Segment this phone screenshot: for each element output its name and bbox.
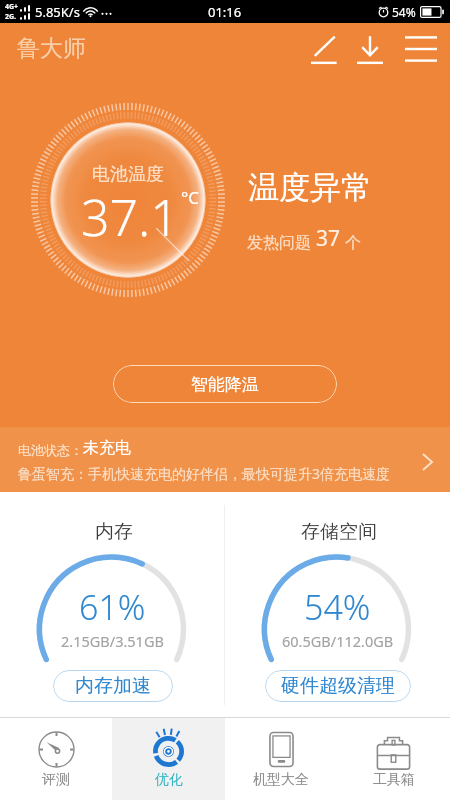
- staticText: 温度异常: [248, 168, 372, 207]
- staticText: 4G+: [5, 2, 19, 12]
- staticText: °C: [181, 186, 200, 209]
- staticText: 电池温度: [92, 163, 164, 186]
- staticText: 存储空间: [301, 520, 377, 544]
- staticText: 2.15GB/3.51GB: [61, 631, 164, 651]
- staticText: 54%: [304, 584, 371, 630]
- staticText: 智能降温: [191, 374, 259, 395]
- button[interactable]: 工具箱: [337, 718, 450, 800]
- staticText: 2G.: [5, 12, 17, 22]
- button[interactable]: [0, 427, 450, 492]
- staticText: 60.5GB/112.0GB: [282, 631, 394, 651]
- staticText: 鲁蛋智充：手机快速充电的好伴侣，最快可提升3倍充电速度: [18, 464, 391, 483]
- button[interactable]: Edit: [300, 25, 348, 73]
- staticText: 电池状态：: [18, 442, 83, 458]
- staticText: 机型大全: [253, 771, 309, 789]
- staticText: 54%: [392, 4, 416, 20]
- staticText: 硬件超级清理: [281, 674, 395, 698]
- staticText: 评测: [42, 771, 70, 789]
- button[interactable]: Download: [346, 25, 394, 73]
- staticText: 37.1: [81, 183, 179, 251]
- staticText: 未充电: [83, 438, 131, 458]
- staticText: 内存加速: [75, 674, 151, 698]
- staticText: 01:16: [208, 3, 242, 21]
- button[interactable]: 智能降温: [113, 365, 337, 403]
- button[interactable]: 优化: [112, 718, 225, 800]
- button[interactable]: 硬件超级清理: [265, 670, 411, 702]
- staticText: 工具箱: [373, 771, 415, 789]
- staticText: 鲁大师: [17, 34, 86, 63]
- staticText: 37: [316, 224, 341, 253]
- staticText: 5.85K/s: [35, 3, 80, 21]
- staticText: 内存: [95, 520, 133, 544]
- staticText: 61%: [79, 584, 146, 630]
- staticText: 优化: [155, 771, 183, 789]
- button[interactable]: 内存加速: [53, 670, 173, 702]
- button[interactable]: 评测: [0, 718, 112, 800]
- button[interactable]: 机型大全: [225, 718, 337, 800]
- button[interactable]: Menu: [397, 25, 445, 73]
- staticText: 个: [341, 231, 362, 253]
- staticText: 发热问题: [247, 231, 316, 253]
